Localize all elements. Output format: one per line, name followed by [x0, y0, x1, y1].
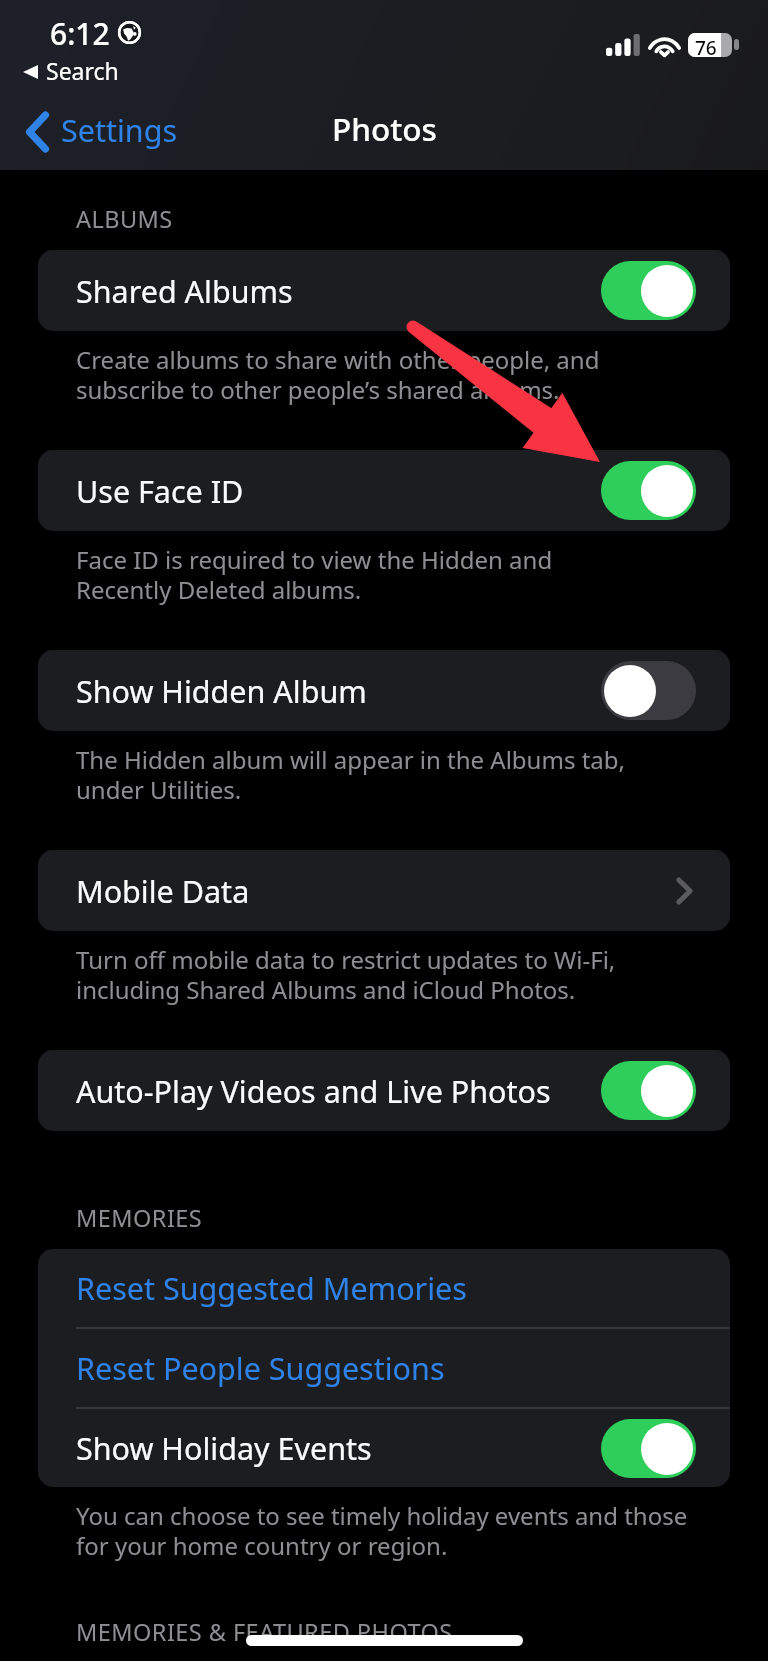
staticText: Auto-Play Videos and Live Photos — [76, 1070, 551, 1112]
staticText: ALBUMS — [76, 203, 173, 235]
staticText: Face ID is required to view the Hidden a… — [76, 543, 553, 606]
staticText: Reset Suggested Memories — [76, 1267, 467, 1309]
button[interactable]: Mobile Data — [38, 850, 730, 931]
button[interactable]: Show Hidden Album — [38, 650, 730, 731]
button[interactable]: Use Face ID — [38, 450, 730, 531]
button[interactable]: Auto-Play Videos and Live Photos — [38, 1050, 730, 1131]
button[interactable]: Show Holiday Events — [38, 1409, 730, 1487]
staticText: Show Holiday Events — [76, 1427, 372, 1469]
staticText: Shared Albums — [76, 270, 293, 312]
staticText: Mobile Data — [76, 870, 250, 912]
button[interactable]: Reset People Suggestions — [38, 1329, 730, 1407]
button[interactable]: Back to Search — [23, 56, 119, 87]
staticText: Show Hidden Album — [76, 670, 367, 712]
staticText: 76 — [695, 35, 717, 61]
staticText: Settings — [61, 109, 178, 151]
staticText: MEMORIES — [76, 1202, 203, 1234]
staticText: MEMORIES & FEATURED PHOTOS — [76, 1616, 453, 1648]
staticText: 6:12 — [50, 13, 110, 54]
button[interactable]: Toggle on — [601, 1419, 696, 1478]
staticText: The Hidden album will appear in the Albu… — [76, 743, 625, 806]
button[interactable]: Reset Suggested Memories — [38, 1249, 730, 1327]
staticText: Create albums to share with other people… — [76, 343, 600, 406]
button[interactable]: Toggle on — [601, 461, 696, 520]
staticText: Reset People Suggestions — [76, 1347, 445, 1389]
staticText: Use Face ID — [76, 470, 244, 512]
other: Open Mobile Data — [662, 871, 696, 911]
staticText: Search — [46, 55, 119, 86]
button[interactable]: Shared Albums — [38, 250, 730, 331]
staticText: Photos — [332, 107, 437, 150]
staticText: Turn off mobile data to restrict updates… — [76, 943, 616, 1006]
button[interactable]: Toggle off — [601, 661, 696, 720]
button[interactable]: Toggle on — [601, 261, 696, 320]
button[interactable]: Back to Settings — [27, 111, 181, 153]
button[interactable]: Toggle on — [601, 1061, 696, 1120]
staticText: You can choose to see timely holiday eve… — [76, 1499, 688, 1562]
